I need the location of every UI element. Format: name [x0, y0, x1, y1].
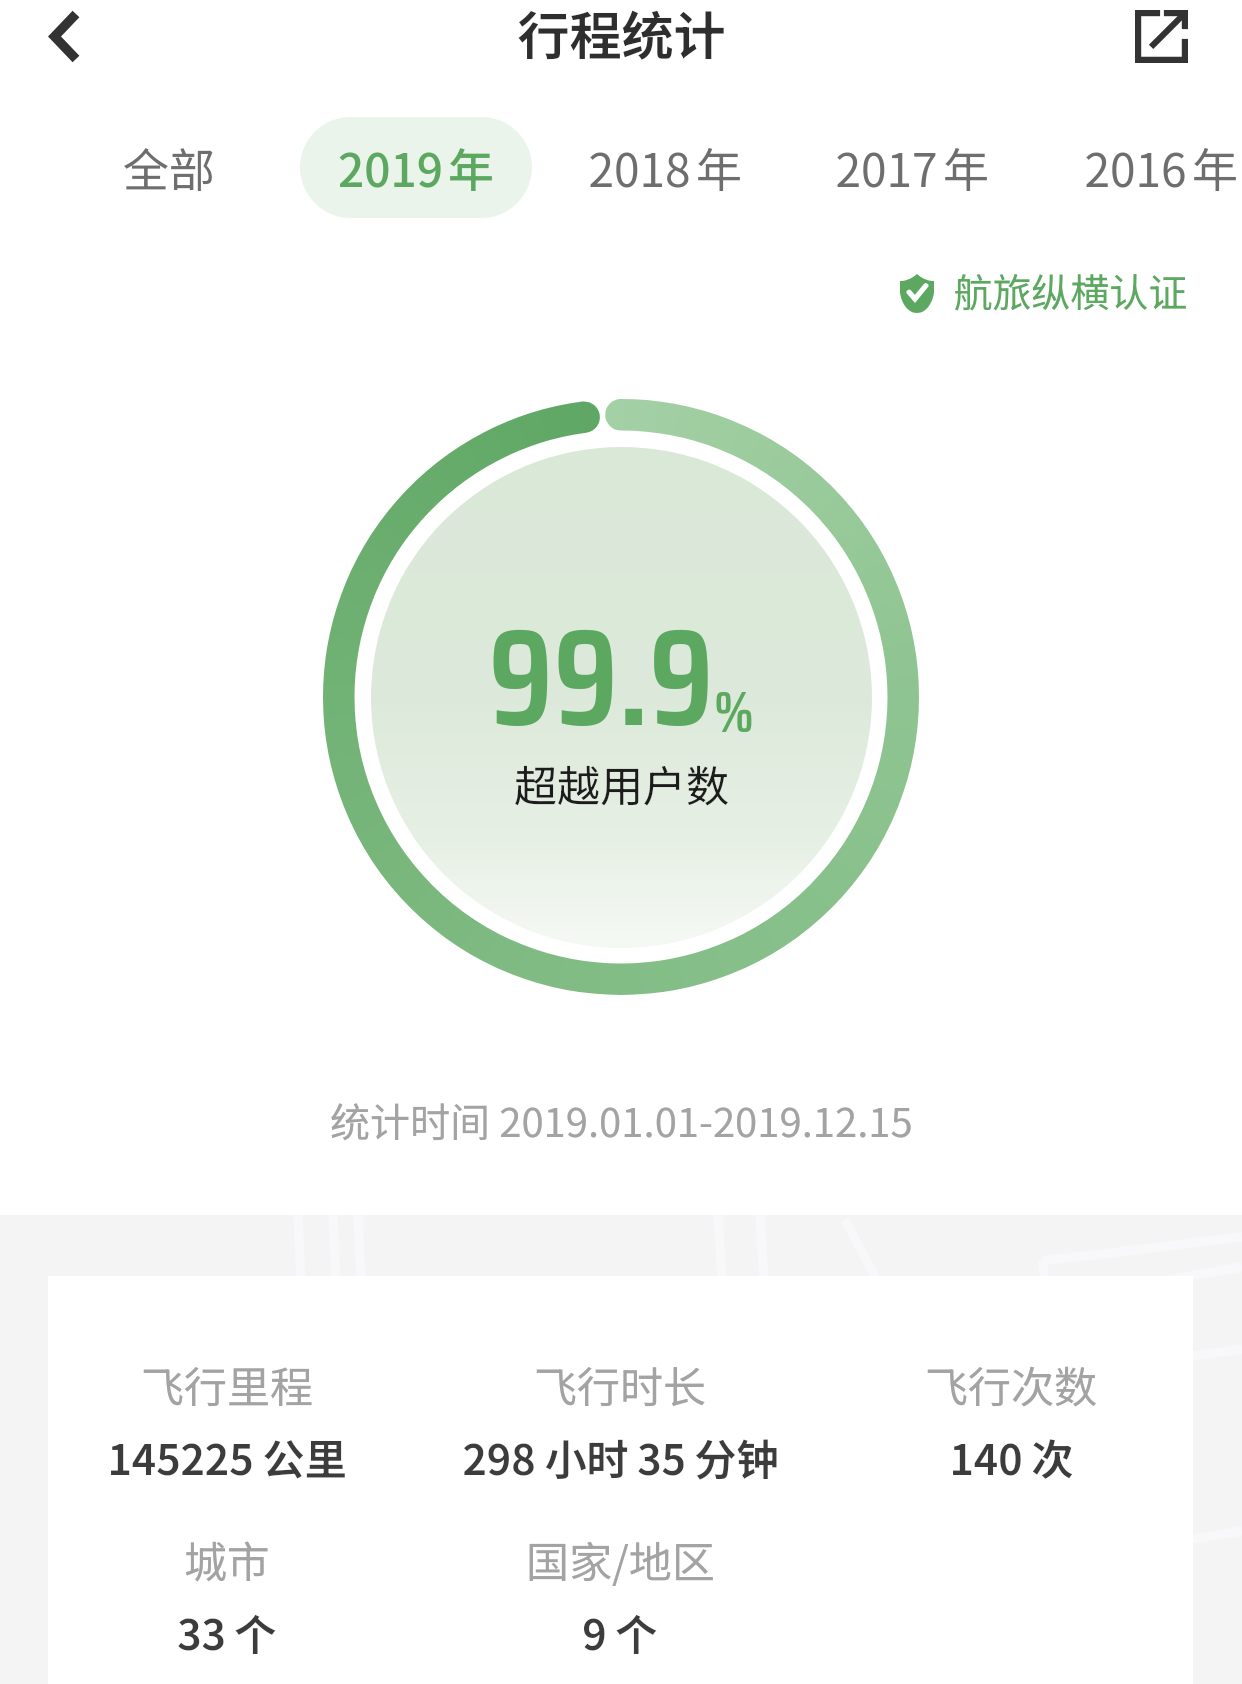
button[interactable]: Share — [1120, 0, 1220, 88]
staticText: 飞行次数 — [925, 1353, 1097, 1415]
staticText: 小时 — [544, 1426, 629, 1487]
staticText: 城市 — [184, 1528, 270, 1590]
staticText: 2017 — [835, 134, 938, 201]
staticText: 35 — [637, 1426, 686, 1487]
staticText: 2016 — [1084, 134, 1187, 201]
button[interactable]: 飞行时长 — [430, 1353, 810, 1487]
staticText: 2019.01.01-2019.12.15 — [490, 1091, 913, 1149]
button[interactable]: 2016 — [1056, 117, 1242, 218]
button[interactable]: 国家/地区 — [430, 1528, 810, 1662]
staticText: 统计时间 — [330, 1091, 490, 1149]
staticText: 2019 — [338, 134, 443, 201]
staticText: 年 — [943, 134, 989, 201]
staticText: % — [714, 667, 754, 757]
button[interactable]: 2019 — [300, 117, 532, 218]
staticText: 33 — [177, 1601, 226, 1662]
staticText: 145225 — [107, 1426, 254, 1487]
staticText: 公里 — [262, 1426, 347, 1487]
button[interactable]: 飞行次数 — [821, 1353, 1201, 1487]
button[interactable]: 全部 — [64, 117, 274, 218]
staticText: 分钟 — [694, 1426, 779, 1487]
button[interactable]: 飞行里程 — [37, 1353, 417, 1487]
button[interactable]: 2017 — [807, 117, 1017, 218]
staticText: 个 — [234, 1601, 277, 1662]
staticText: 140 — [949, 1426, 1023, 1487]
staticText: 年 — [448, 134, 494, 201]
staticText: 国家/地区 — [526, 1528, 715, 1590]
button[interactable]: 城市 — [37, 1528, 417, 1662]
button[interactable]: 2018 — [560, 117, 770, 218]
button[interactable]: 航旅纵横认证 — [900, 262, 1188, 318]
staticText: 年 — [696, 134, 742, 201]
staticText: 年 — [1192, 134, 1238, 201]
staticText: 超越用户数 — [514, 752, 729, 814]
button[interactable]: Back — [0, 0, 110, 88]
staticText: 行程统计 — [517, 0, 726, 61]
staticText: 99.9 — [488, 570, 714, 786]
staticText: 全部 — [123, 134, 215, 201]
staticText: 航旅纵横认证 — [953, 262, 1188, 318]
staticText: 飞行里程 — [141, 1353, 313, 1415]
staticText: 298 — [462, 1426, 536, 1487]
staticText: 9 — [582, 1601, 607, 1662]
staticText: 飞行时长 — [534, 1353, 706, 1415]
staticText: 2018 — [588, 134, 691, 201]
staticText: 个 — [615, 1601, 658, 1662]
staticText: 次 — [1031, 1426, 1074, 1487]
